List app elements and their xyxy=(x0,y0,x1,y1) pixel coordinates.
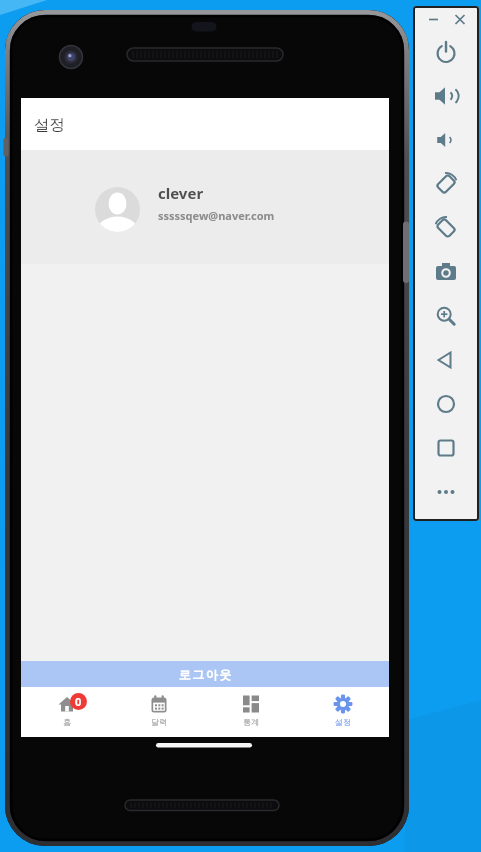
staticText: clever xyxy=(158,183,204,203)
staticText: sssssqew@naver.com xyxy=(158,208,275,223)
button[interactable]: 달력 xyxy=(113,687,205,737)
button[interactable]: 통계 xyxy=(205,687,297,737)
button[interactable] xyxy=(413,470,479,514)
button[interactable]: 로그아웃 xyxy=(21,661,389,687)
staticText: 설정 xyxy=(335,717,351,727)
button[interactable] xyxy=(413,74,479,118)
button[interactable] xyxy=(413,382,479,426)
button[interactable] xyxy=(413,118,479,162)
staticText: 통계 xyxy=(243,717,259,727)
button[interactable] xyxy=(413,426,479,470)
button[interactable] xyxy=(421,11,446,28)
button[interactable] xyxy=(413,162,479,206)
button[interactable] xyxy=(447,11,472,28)
staticText: 설정 xyxy=(34,115,65,135)
button[interactable] xyxy=(413,250,479,294)
staticText: 0 xyxy=(75,694,82,709)
button[interactable]: 설정 xyxy=(297,687,389,737)
staticText: 달력 xyxy=(151,717,167,727)
staticText: 로그아웃 xyxy=(178,667,232,682)
button[interactable]: clever xyxy=(21,150,389,264)
button[interactable] xyxy=(413,338,479,382)
button[interactable] xyxy=(413,294,479,338)
button[interactable] xyxy=(413,30,479,74)
button[interactable] xyxy=(413,206,479,250)
button[interactable]: 홈 xyxy=(21,687,113,737)
staticText: 홈 xyxy=(63,717,71,727)
